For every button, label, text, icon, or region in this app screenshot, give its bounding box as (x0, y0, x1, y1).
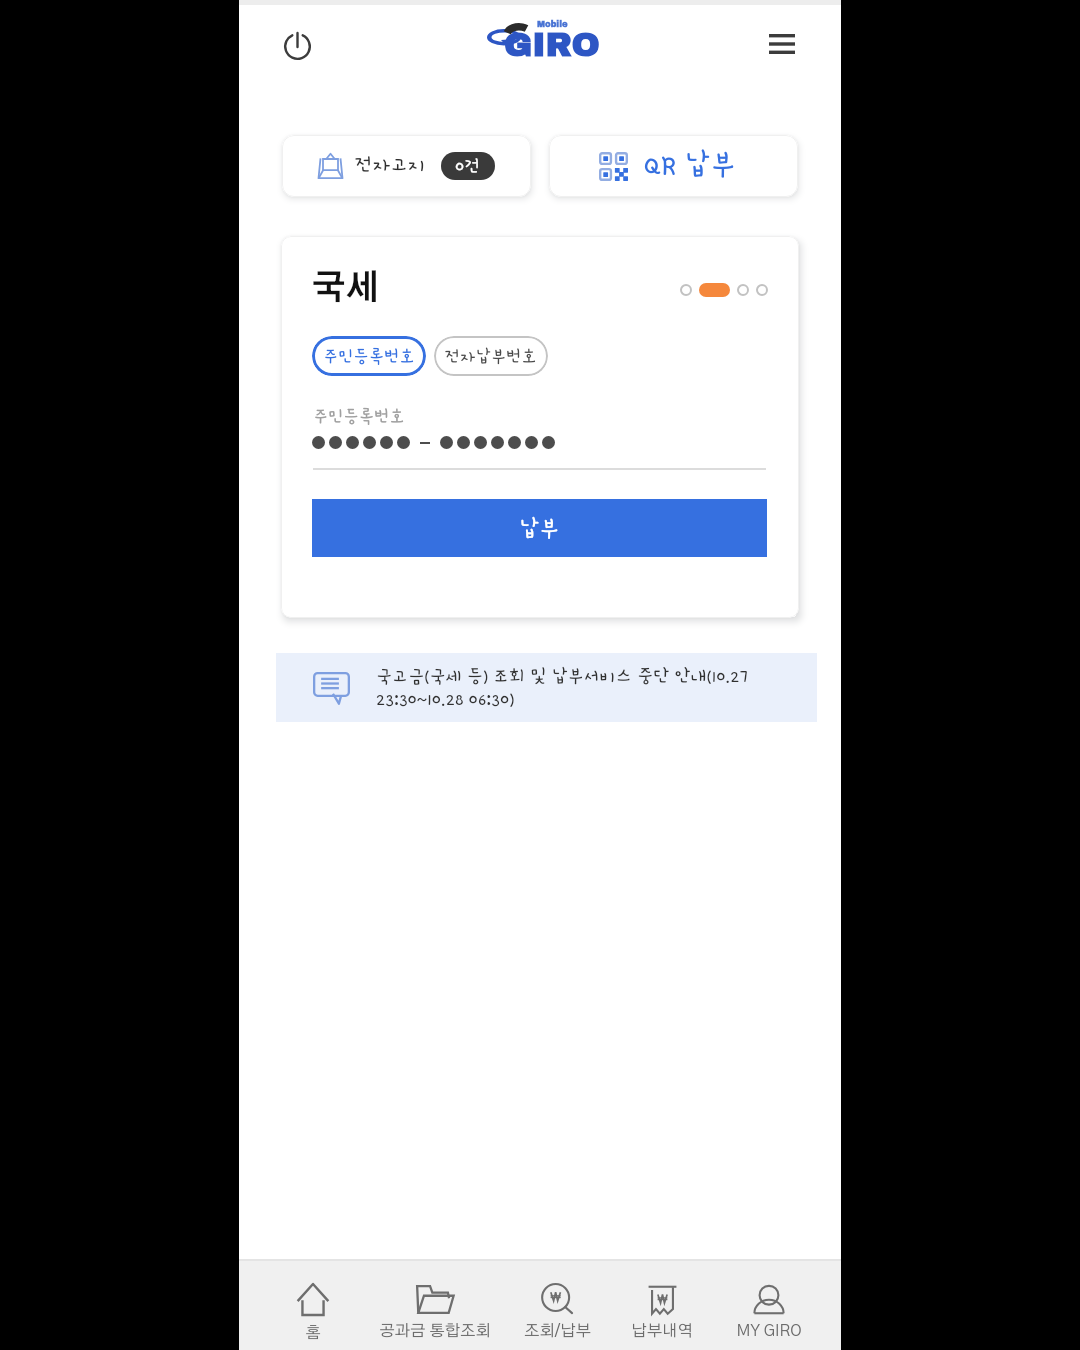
button[interactable]: MY GIRO (714, 1261, 824, 1350)
button[interactable]: 홈 (257, 1261, 369, 1350)
staticText: 0건 (455, 156, 481, 176)
button[interactable]: 전자고지 (282, 135, 531, 197)
staticText: 조회/납부 (524, 1323, 591, 1339)
button[interactable]: 전자납부번호 (434, 336, 548, 376)
staticText: 국고금(국세 등) 조회 및 납부서비스 중단 안내(10.27 23:30~1… (376, 666, 748, 710)
staticText: 홈 (305, 1325, 321, 1341)
staticText: MY GIRO (736, 1323, 802, 1339)
staticText: 국세 (312, 272, 380, 306)
staticText: 납부내역 (631, 1323, 693, 1339)
button[interactable]: 납부 (312, 499, 767, 557)
staticText: 주민등록번호 (313, 407, 405, 426)
button[interactable]: 조회/납부 (502, 1261, 612, 1350)
button[interactable]: 공과금 통합조회 (373, 1261, 497, 1350)
staticText: Mobile (537, 20, 568, 29)
button[interactable]: QR 납부 (549, 135, 798, 197)
button[interactable]: Power (273, 22, 321, 70)
staticText: 전자납부번호 (445, 347, 537, 366)
staticText: 주민등록번호 (323, 347, 415, 366)
staticText: 전자고지 (355, 154, 426, 176)
staticText: QR 납부 (644, 149, 736, 181)
button[interactable]: 납부내역 (610, 1261, 714, 1350)
staticText: 납부 (519, 516, 560, 541)
button[interactable]: 국고금(국세 등) 조회 및 납부서비스 중단 안내(10.27 23:30~1… (276, 653, 817, 722)
staticText: 공과금 통합조회 (379, 1323, 491, 1339)
button[interactable]: 주민등록번호 (312, 336, 426, 376)
staticText: GIRO (504, 26, 600, 63)
button[interactable]: Menu (758, 20, 806, 68)
